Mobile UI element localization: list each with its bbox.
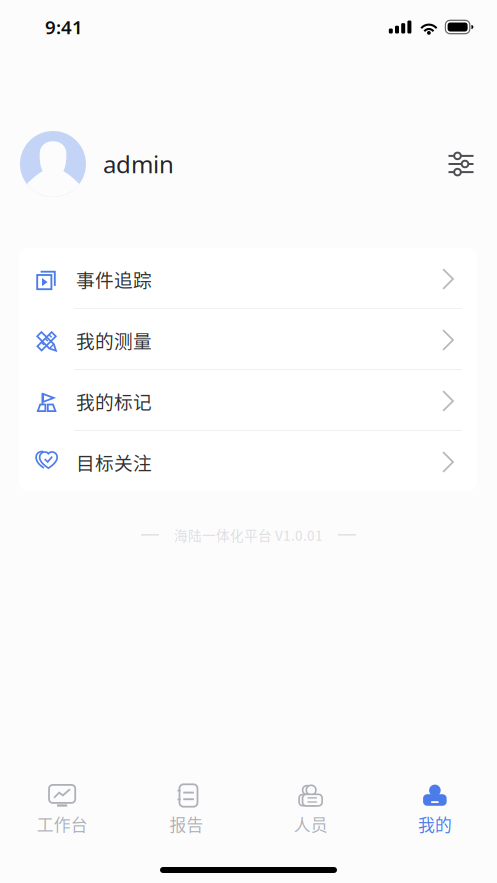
staticText: 人员 bbox=[294, 812, 328, 836]
staticText: 我的测量 bbox=[76, 326, 152, 353]
staticText: 9:41 bbox=[45, 15, 83, 39]
staticText: admin bbox=[103, 148, 174, 180]
button[interactable]: 报告 bbox=[124, 784, 248, 836]
button[interactable]: 工作台 bbox=[0, 784, 124, 836]
staticText: 事件追踪 bbox=[76, 265, 152, 292]
button[interactable]: 我的测量 bbox=[19, 309, 477, 369]
staticText: 目标关注 bbox=[76, 448, 152, 475]
staticText: 我的 bbox=[418, 812, 452, 836]
staticText: 报告 bbox=[169, 812, 203, 836]
button[interactable]: 我的标记 bbox=[19, 370, 477, 430]
button[interactable]: 我的 bbox=[373, 784, 497, 836]
button[interactable]: 事件追踪 bbox=[19, 248, 477, 308]
staticText: 我的标记 bbox=[76, 387, 152, 414]
button[interactable]: 目标关注 bbox=[19, 431, 477, 491]
staticText: 海陆一体化平台 V1.0.01 bbox=[174, 525, 323, 545]
button[interactable]: Settings bbox=[439, 142, 483, 186]
button[interactable]: 人员 bbox=[248, 784, 373, 836]
staticText: 工作台 bbox=[37, 812, 88, 836]
